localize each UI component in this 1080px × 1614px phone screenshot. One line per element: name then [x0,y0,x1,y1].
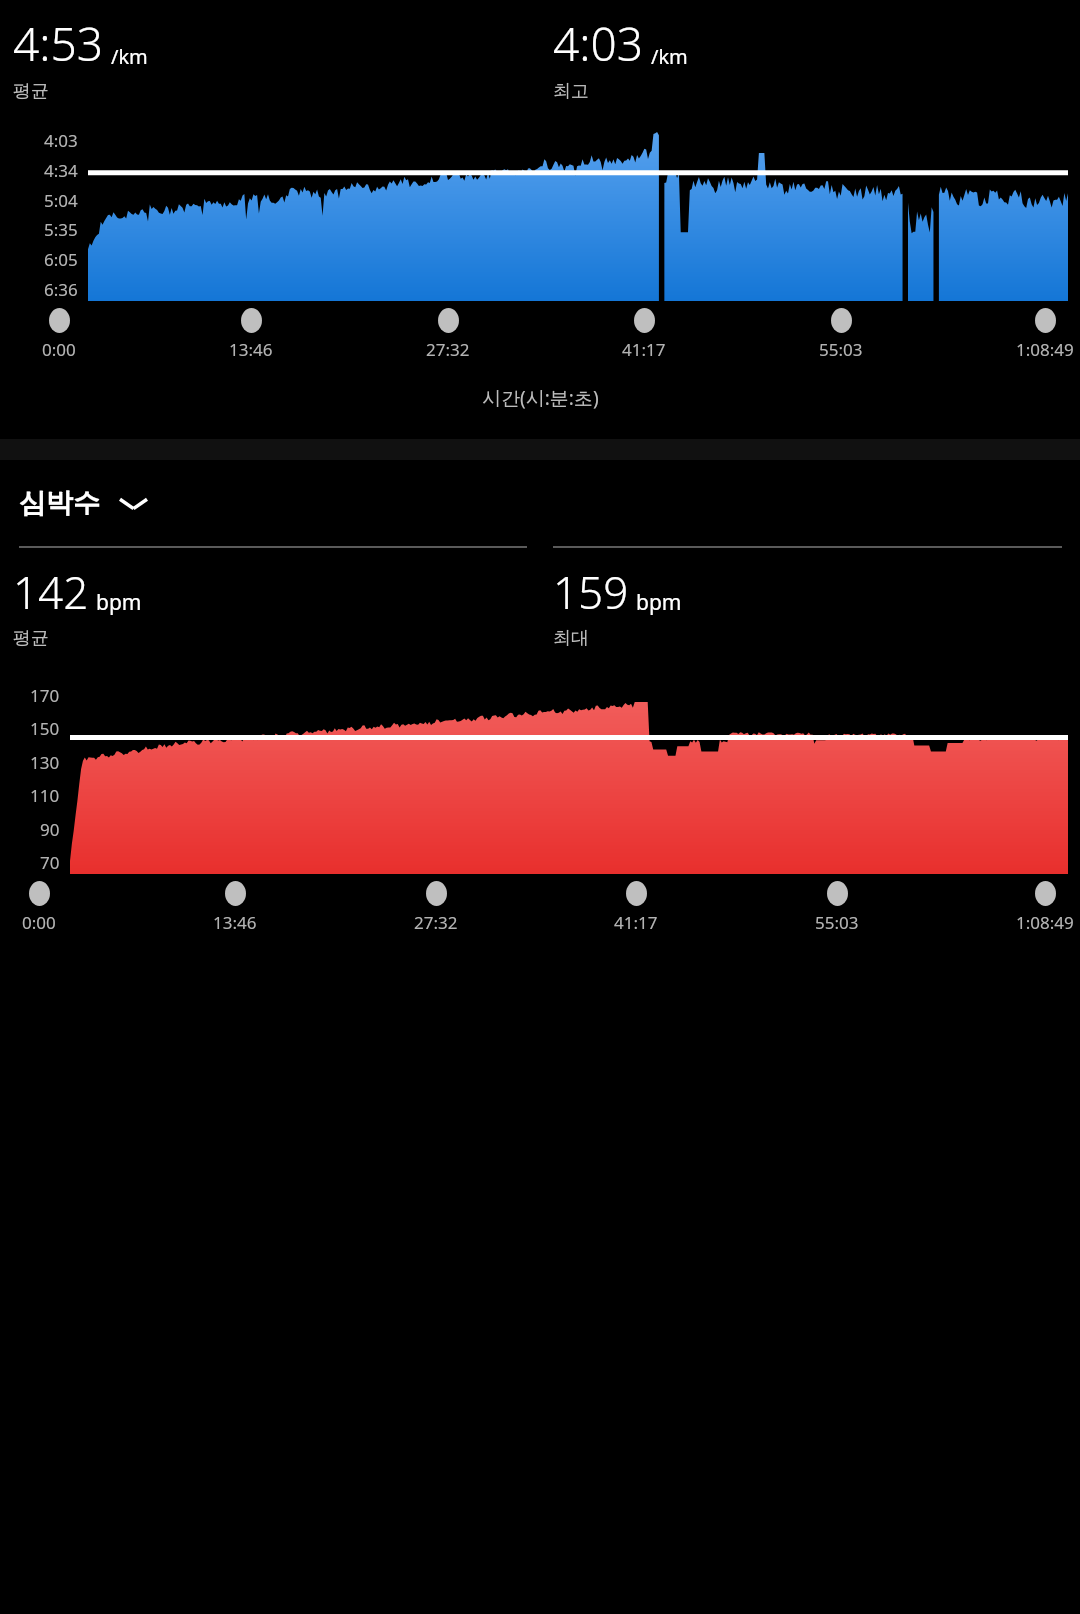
staticText: 27:32 [414,911,458,934]
staticText: 6:36 [44,278,78,301]
staticText: 70 [40,851,60,874]
staticText: 4:03 [44,129,78,152]
button[interactable]: 심박수 [15,482,151,524]
staticText: 55:03 [815,911,859,934]
staticText: 4:53 [13,12,104,75]
staticText: 최대 [553,627,589,650]
staticText: 1:08:49 [1016,338,1074,361]
staticText: 110 [30,784,60,807]
staticText: bpm [96,588,142,617]
staticText: 0:00 [22,911,56,934]
staticText: 130 [30,751,60,774]
staticText: 41:17 [614,911,658,934]
staticText: 150 [30,717,60,740]
staticText: 1:08:49 [1016,911,1074,934]
staticText: 최고 [553,80,589,103]
other: Expand heart rate [120,495,147,512]
staticText: 27:32 [426,338,470,361]
staticText: 평균 [13,627,49,650]
staticText: /km [651,43,688,70]
staticText: 13:46 [213,911,257,934]
staticText: 5:04 [44,189,78,212]
staticText: 평균 [13,80,49,103]
staticText: 41:17 [622,338,666,361]
staticText: 55:03 [819,338,863,361]
staticText: 6:05 [44,248,78,271]
staticText: 159 [553,562,629,622]
staticText: 13:46 [229,338,273,361]
staticText: 170 [30,684,60,707]
staticText: 5:35 [44,218,78,241]
staticText: 심박수 [19,486,100,520]
staticText: 4:34 [44,159,78,182]
staticText: 90 [40,818,60,841]
staticText: 0:00 [42,338,76,361]
staticText: 시간(시:분:초) [482,385,599,411]
staticText: /km [111,43,148,70]
staticText: 4:03 [553,12,644,75]
staticText: bpm [636,588,682,617]
staticText: 142 [13,562,89,622]
